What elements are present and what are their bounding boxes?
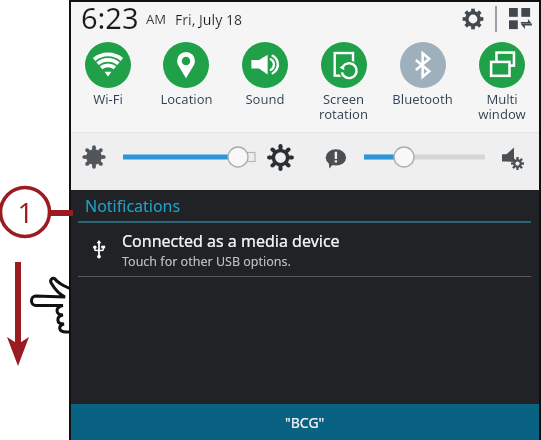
- staticText: Sound: [245, 90, 285, 108]
- button[interactable]: Volume: [363, 145, 487, 169]
- staticText: Touch for other USB options.: [122, 253, 291, 270]
- button[interactable]: Location: [147, 38, 225, 132]
- button[interactable]: Multi window: [462, 38, 541, 132]
- staticText: Wi-Fi: [93, 90, 123, 108]
- staticText: Bluetooth: [392, 90, 453, 108]
- button[interactable]: Bluetooth: [383, 38, 462, 132]
- staticText: "BCG": [285, 413, 325, 432]
- staticText: Connected as a media device: [122, 230, 340, 252]
- staticText: Notifications: [85, 195, 181, 217]
- button[interactable]: Sound settings: [500, 145, 527, 172]
- staticText: 6:23: [81, 0, 139, 36]
- staticText: 1: [17, 193, 34, 231]
- button[interactable]: Brightness: [122, 145, 252, 169]
- button[interactable]: Sound: [225, 38, 304, 132]
- button[interactable]: Screen rotation: [304, 38, 383, 132]
- staticText: Screen rotation: [319, 90, 368, 123]
- button[interactable]: Settings: [458, 4, 488, 34]
- button[interactable]: Connected as a media device: [69, 223, 541, 276]
- staticText: Fri, July 18: [175, 10, 242, 29]
- staticText: Location: [160, 90, 213, 108]
- staticText: AM: [146, 10, 167, 28]
- button[interactable]: Edit quick settings: [506, 5, 534, 33]
- button[interactable]: Wi-Fi: [69, 38, 147, 132]
- button[interactable]: Auto brightness: [267, 144, 293, 170]
- staticText: Multi window: [478, 90, 526, 123]
